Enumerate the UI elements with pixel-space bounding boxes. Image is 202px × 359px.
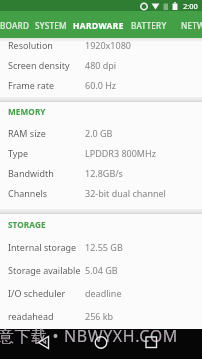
staticText: 256 kb [85, 310, 114, 322]
staticText: Storage available [8, 264, 81, 276]
staticText: 意下载 • NBWYXH.COM [0, 325, 178, 347]
staticText: 5.04 GB [85, 264, 118, 276]
staticText: readahead [8, 310, 54, 322]
staticText: BATTERY [131, 20, 167, 31]
staticText: MEMORY [8, 106, 46, 117]
staticText: NETWORK [181, 20, 202, 31]
staticText: LPDDR3 800MHz [85, 147, 156, 159]
staticText: 2:00 [183, 1, 198, 11]
staticText: Screen density [8, 59, 70, 71]
staticText: 1920x1080 [85, 39, 131, 51]
staticText: Type [8, 147, 29, 159]
staticText: HARDWARE [73, 20, 124, 31]
staticText: Resolution [8, 39, 53, 51]
staticText: Frame rate [8, 79, 54, 91]
staticText: 32-bit dual channel [85, 187, 166, 199]
staticText: STORAGE [8, 219, 46, 230]
staticText: 2.0 GB [85, 127, 113, 139]
staticText: 12.55 GB [85, 241, 123, 253]
staticText: BOARD [0, 20, 30, 31]
staticText: Bandwidth [8, 167, 54, 179]
staticText: 12.8GB/s [85, 167, 123, 179]
staticText: deadline [85, 287, 122, 299]
staticText: SYSTEM [35, 20, 67, 31]
staticText: Internal storage [8, 241, 77, 253]
staticText: RAM size [8, 127, 46, 139]
staticText: 480 dpi [85, 59, 117, 71]
staticText: Channels [8, 187, 48, 199]
staticText: 60.0 Hz [85, 79, 117, 91]
staticText: I/O scheduler [8, 287, 66, 299]
